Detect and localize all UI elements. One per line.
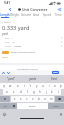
staticText: z <box>14 97 16 101</box>
button[interactable]: Length <box>0 13 10 18</box>
button[interactable]: e <box>14 83 21 89</box>
button[interactable]: k <box>49 89 55 95</box>
staticText: r <box>24 84 26 88</box>
button[interactable]: yards <box>22 75 43 83</box>
button[interactable]: a <box>3 89 10 95</box>
button[interactable]: t <box>28 83 34 89</box>
button[interactable]: Weight <box>10 13 20 18</box>
button[interactable]: i <box>46 83 52 89</box>
staticText: f <box>27 90 28 94</box>
staticText: k <box>51 90 53 94</box>
staticText: b <box>38 97 40 101</box>
staticText: Speed <box>43 13 52 17</box>
button[interactable] <box>2 51 9 54</box>
button[interactable]: Switch keyboard <box>10 103 17 109</box>
button[interactable]: q <box>0 83 7 89</box>
staticText: 12 <box>12 41 15 44</box>
button[interactable]: n <box>42 96 48 102</box>
staticText: n <box>44 97 46 101</box>
staticText: o <box>54 84 56 88</box>
button[interactable]: h <box>37 89 43 95</box>
staticText: “yard” <box>7 77 15 81</box>
button[interactable]: o <box>52 83 58 89</box>
staticText: v <box>32 97 34 101</box>
staticText: Done <box>53 71 58 74</box>
button[interactable]: s <box>10 89 17 95</box>
staticText: m <box>50 97 53 101</box>
button[interactable]: Emoji keyboard <box>2 112 6 116</box>
staticText: p <box>60 84 62 88</box>
button[interactable]: “yard” <box>0 75 22 83</box>
staticText: c <box>26 97 28 101</box>
button[interactable]: Next field <box>6 71 10 75</box>
staticText: l <box>58 90 59 94</box>
button[interactable]: v <box>30 96 36 102</box>
staticText: x <box>20 97 22 101</box>
button[interactable]: f <box>24 89 31 95</box>
button[interactable]: c <box>24 96 30 102</box>
button[interactable]: metre <box>0 44 64 48</box>
button[interactable]: y <box>34 83 40 89</box>
staticText: space <box>29 105 36 108</box>
staticText: Yard <box>51 77 57 81</box>
staticText: Weight <box>10 13 20 17</box>
staticText: t <box>30 84 32 88</box>
button[interactable]: l <box>55 89 61 95</box>
button[interactable]: Shift <box>0 96 10 102</box>
button[interactable]: inch <box>0 40 64 44</box>
button[interactable]: w <box>7 83 14 89</box>
staticText: yards <box>29 77 37 81</box>
button[interactable]: Speed <box>42 13 53 18</box>
staticText: Volume <box>21 13 31 17</box>
button[interactable]: Time <box>53 13 64 18</box>
staticText: y <box>36 84 38 88</box>
staticText: result <box>2 56 8 59</box>
staticText: s <box>13 90 15 94</box>
staticText: 1 <box>12 37 14 40</box>
button[interactable]: foot <box>0 36 64 40</box>
staticText: 123 <box>3 105 7 108</box>
button[interactable]: m <box>48 96 54 102</box>
staticText: Time <box>55 13 62 17</box>
button[interactable]: space <box>17 103 48 109</box>
staticText: Conversion history <box>17 67 39 70</box>
staticText: Area <box>33 13 40 17</box>
staticText: inch <box>5 41 10 44</box>
button[interactable]: Share <box>55 6 64 13</box>
button[interactable]: Done <box>52 71 59 74</box>
button[interactable]: z <box>11 96 18 102</box>
staticText: i <box>49 84 50 88</box>
button[interactable]: Volume <box>20 13 31 18</box>
staticText: a <box>6 90 8 94</box>
button[interactable]: g <box>31 89 37 95</box>
staticText: g <box>33 90 35 94</box>
staticText: return <box>53 105 59 108</box>
button[interactable]: u <box>40 83 46 89</box>
staticText: yard <box>2 32 8 36</box>
staticText: w <box>9 84 12 88</box>
button[interactable]: return <box>48 103 64 109</box>
staticText: foot <box>5 37 10 40</box>
staticText: h <box>39 90 41 94</box>
button[interactable]: Back <box>0 6 20 13</box>
staticText: j <box>46 90 47 94</box>
button[interactable]: p <box>58 83 64 89</box>
button[interactable]: Yard <box>43 75 64 83</box>
button[interactable]: j <box>43 89 49 95</box>
button[interactable]: x <box>18 96 24 102</box>
button[interactable]: r <box>21 83 28 89</box>
button[interactable]: Dictation <box>59 112 63 116</box>
button[interactable]: b <box>36 96 42 102</box>
staticText: enter the length value <box>11 51 35 54</box>
button[interactable]: Backspace <box>55 96 64 102</box>
button[interactable]: Previous field <box>1 71 5 75</box>
button[interactable]: d <box>17 89 24 95</box>
staticText: metre <box>5 45 12 48</box>
staticText: e <box>17 84 19 88</box>
button[interactable]: 123 <box>0 103 10 109</box>
button[interactable]: Area <box>31 13 42 18</box>
staticText: Unit Converter <box>22 7 48 12</box>
staticText: d <box>20 90 22 94</box>
staticText: 0.3048 <box>14 45 22 48</box>
staticText: 1 foot = <box>2 20 11 23</box>
